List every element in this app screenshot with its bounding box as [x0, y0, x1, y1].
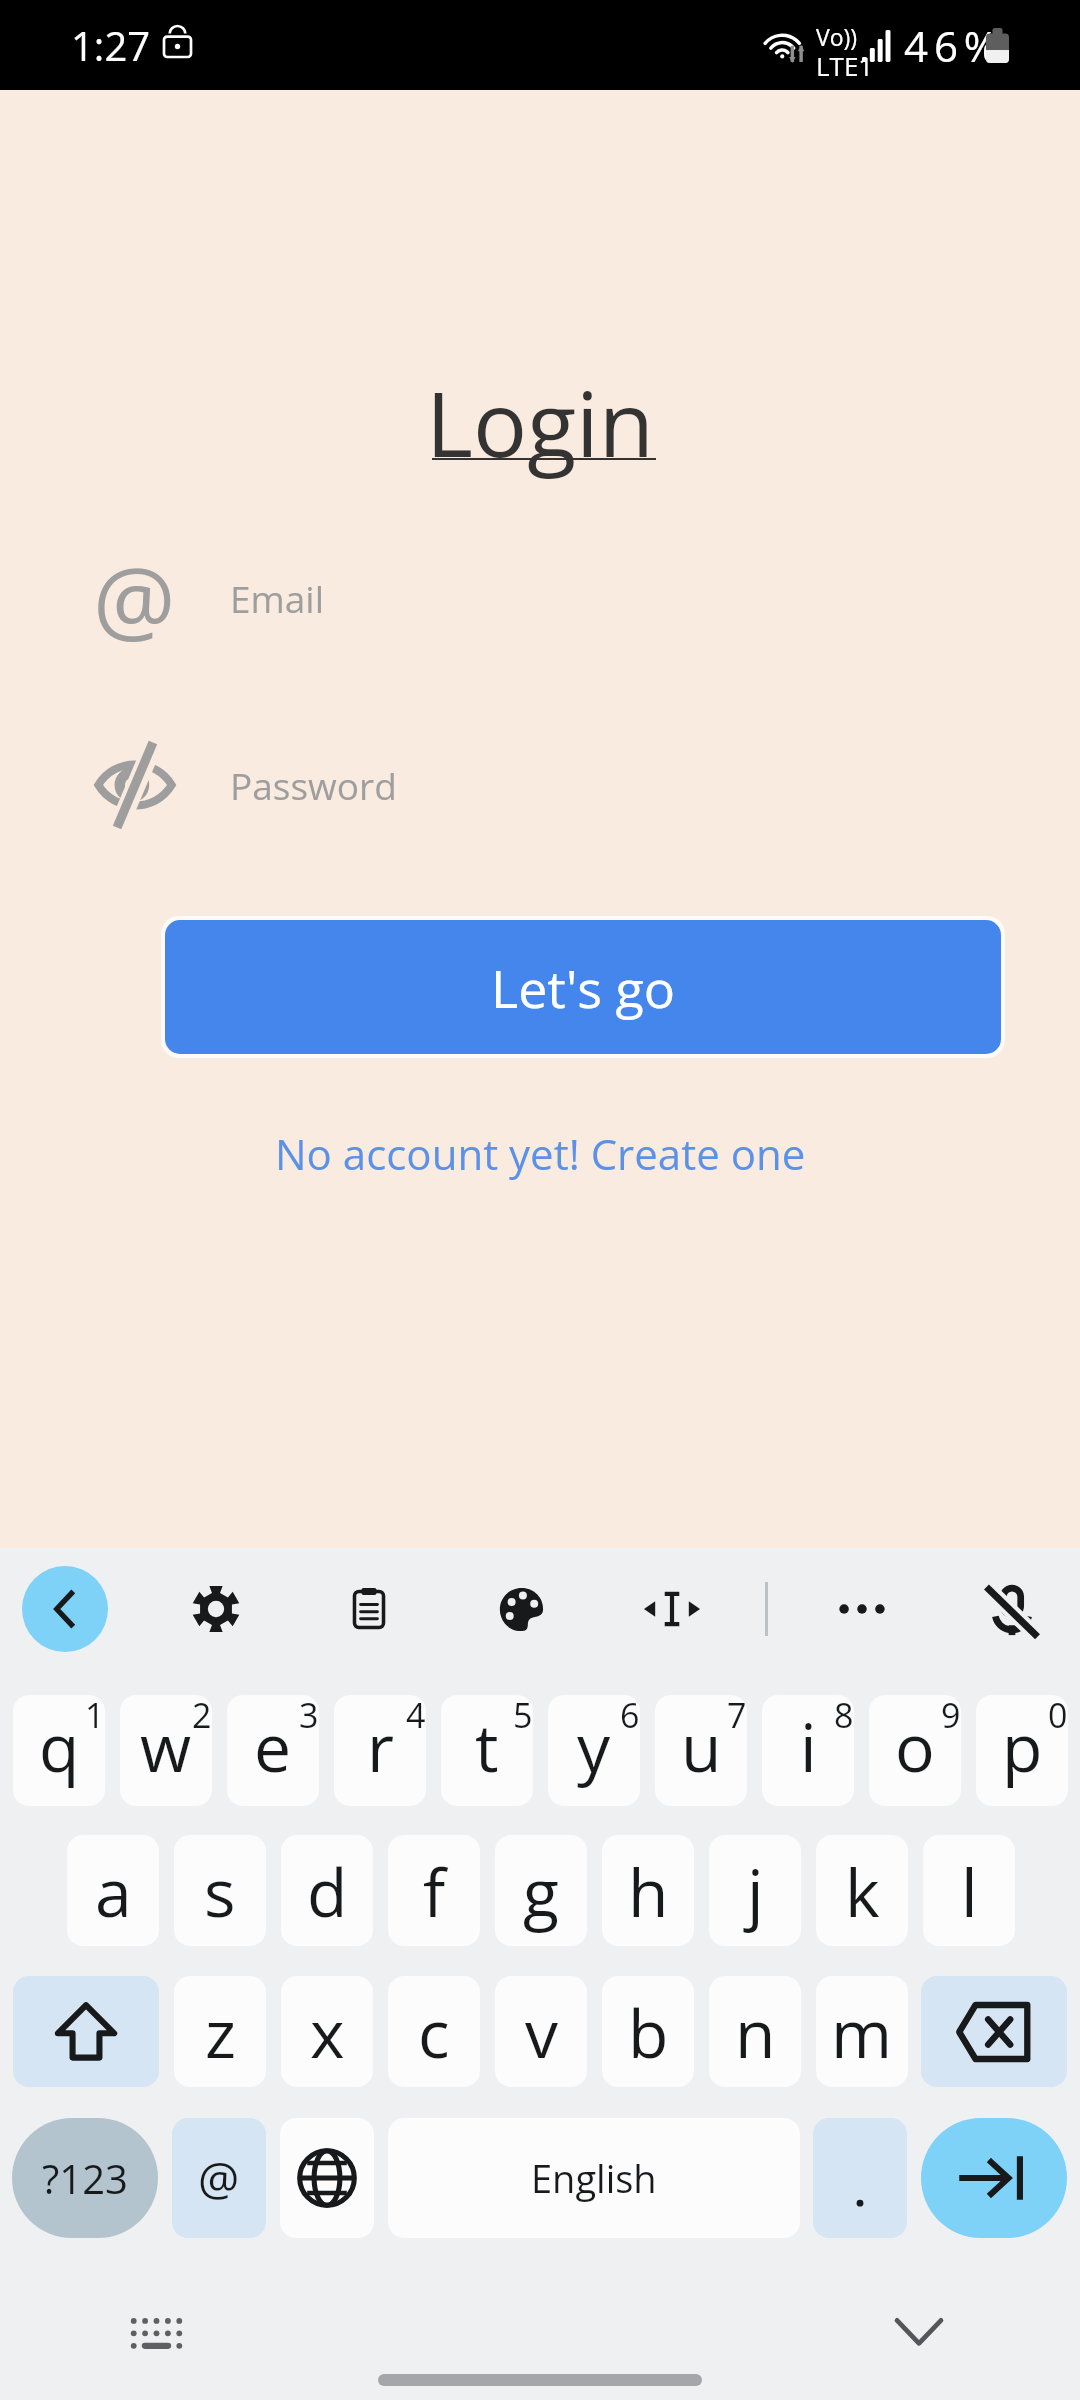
staticText: u [681, 1701, 722, 1791]
staticText: a [95, 1846, 132, 1936]
button[interactable]: r [334, 1695, 426, 1806]
staticText: 7 [727, 1695, 747, 1738]
staticText: m [831, 1987, 893, 2077]
button[interactable]: q [13, 1695, 105, 1806]
staticText: x [310, 1987, 345, 2077]
button[interactable]: @ [172, 2118, 266, 2238]
button[interactable]: Settings [173, 1566, 259, 1652]
button[interactable]: l [923, 1835, 1015, 1946]
staticText: j [747, 1846, 764, 1936]
button[interactable]: j [709, 1835, 801, 1946]
staticText: w [140, 1701, 192, 1791]
button[interactable]: v [495, 1976, 587, 2087]
staticText: i [800, 1701, 817, 1791]
staticText: y [577, 1701, 611, 1791]
staticText: 2 [192, 1695, 212, 1738]
button[interactable]: g [495, 1835, 587, 1946]
button[interactable]: Hide keyboard [894, 2316, 944, 2347]
staticText: h [628, 1846, 669, 1936]
button[interactable]: Backspace [921, 1976, 1067, 2087]
staticText: 9 [941, 1695, 961, 1738]
button[interactable]: Theme [478, 1566, 564, 1652]
staticText: ?123 [42, 2151, 128, 2205]
staticText: t [475, 1701, 499, 1791]
button[interactable]: Voice input off [969, 1566, 1055, 1652]
button[interactable]: x [281, 1976, 373, 2087]
button[interactable]: s [174, 1835, 266, 1946]
button[interactable]: e [227, 1695, 319, 1806]
button[interactable]: n [709, 1976, 801, 2087]
button[interactable]: i [762, 1695, 854, 1806]
button[interactable]: Shift [13, 1976, 159, 2087]
staticText: 4 [406, 1695, 426, 1738]
staticText: 1:27 [71, 18, 151, 72]
staticText: v [525, 1987, 558, 2077]
button[interactable]: h [602, 1835, 694, 1946]
staticText: b [628, 1987, 669, 2077]
button[interactable]: o [869, 1695, 961, 1806]
staticText: English [531, 2152, 657, 2204]
staticText: No account yet! Create one [275, 1125, 806, 1182]
button[interactable]: c [388, 1976, 480, 2087]
button[interactable]: Let's go [165, 920, 1001, 1054]
staticText: Password [230, 760, 397, 810]
button[interactable]: Change language [280, 2118, 374, 2238]
staticText: Email [230, 573, 325, 623]
button[interactable]: p [976, 1695, 1068, 1806]
button[interactable] [813, 2118, 907, 2238]
button[interactable]: Cursor control [629, 1566, 715, 1652]
button[interactable]: w [120, 1695, 212, 1806]
staticText: c [418, 1987, 450, 2077]
staticText: Vo)) [816, 21, 858, 52]
button[interactable]: z [174, 1976, 266, 2087]
staticText: 0 [1048, 1695, 1068, 1738]
button[interactable]: d [281, 1835, 373, 1946]
staticText: e [254, 1701, 292, 1791]
staticText: l [961, 1846, 978, 1936]
staticText: o [895, 1701, 935, 1791]
staticText: d [307, 1846, 348, 1936]
staticText: 46% [904, 17, 1005, 74]
button[interactable]: Back [22, 1566, 108, 1652]
button[interactable]: t [441, 1695, 533, 1806]
staticText: q [39, 1701, 80, 1791]
button[interactable]: Clipboard [326, 1566, 412, 1652]
button[interactable]: Keyboard layout [130, 2318, 183, 2347]
staticText: 3 [299, 1695, 319, 1738]
staticText: s [204, 1846, 236, 1936]
button[interactable]: f [388, 1835, 480, 1946]
staticText: r [367, 1701, 394, 1791]
staticText: f [423, 1846, 446, 1936]
button[interactable]: ?123 [12, 2118, 158, 2238]
staticText: z [205, 1987, 236, 2077]
staticText: @ [198, 2147, 240, 2210]
staticText: n [735, 1987, 776, 2077]
button[interactable]: a [67, 1835, 159, 1946]
button[interactable]: Next field [921, 2118, 1067, 2238]
button[interactable]: @ [96, 555, 976, 641]
staticText: p [1002, 1701, 1043, 1791]
staticText: @ [93, 536, 176, 661]
button[interactable]: No account yet! Create one [0, 1117, 1080, 1189]
button[interactable]: b [602, 1976, 694, 2087]
button[interactable]: m [816, 1976, 908, 2087]
staticText: k [845, 1846, 880, 1936]
button[interactable]: Password [96, 742, 976, 828]
staticText: 8 [834, 1695, 854, 1738]
button[interactable]: English [388, 2118, 800, 2238]
staticText: g [523, 1846, 559, 1936]
button[interactable]: y [548, 1695, 640, 1806]
button[interactable]: More options [819, 1566, 905, 1652]
staticText: 1 [85, 1695, 105, 1738]
staticText: Let's go [491, 952, 676, 1023]
button[interactable]: u [655, 1695, 747, 1806]
button[interactable]: k [816, 1835, 908, 1946]
staticText: 5 [513, 1695, 533, 1738]
staticText: Login [0, 361, 1080, 484]
staticText: 6 [620, 1695, 640, 1738]
staticText: LTE1 [816, 48, 874, 83]
